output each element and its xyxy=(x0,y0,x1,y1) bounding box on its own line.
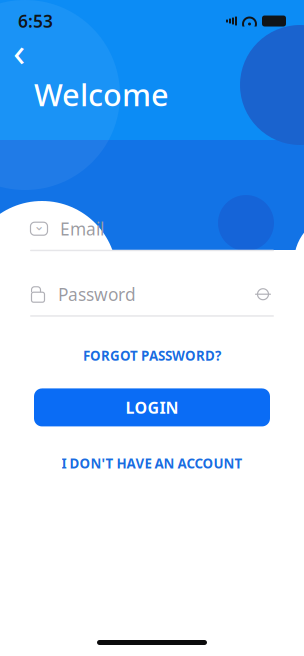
staticText: LOGIN xyxy=(125,397,178,418)
staticText: Email xyxy=(60,217,104,240)
staticText: ⌄ xyxy=(33,218,44,233)
staticText: Welcome xyxy=(34,74,169,115)
button[interactable]: FORGOT PASSWORD? xyxy=(73,341,231,370)
button[interactable]: Show password xyxy=(252,284,274,304)
staticText: FORGOT PASSWORD? xyxy=(83,347,221,364)
staticText: ‹ xyxy=(13,24,25,77)
staticText: Password xyxy=(58,283,136,306)
staticText: I DON'T HAVE AN ACCOUNT xyxy=(61,454,242,472)
button[interactable]: I DON'T HAVE AN ACCOUNT xyxy=(51,448,252,478)
button[interactable]: LOGIN xyxy=(34,388,270,426)
staticText: 6:53 xyxy=(18,9,53,32)
button[interactable]: Back xyxy=(2,36,36,66)
